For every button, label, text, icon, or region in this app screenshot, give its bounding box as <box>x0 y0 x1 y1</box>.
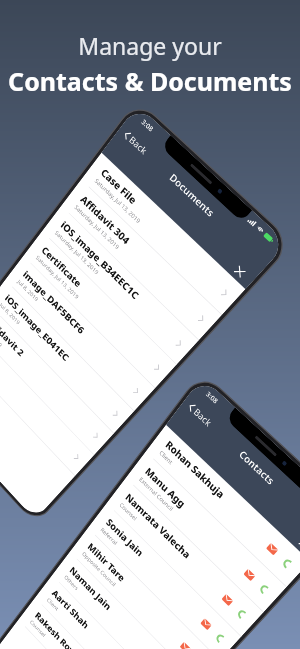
staticText: Referral <box>99 526 119 547</box>
button[interactable]: Rakesh Roy <box>18 598 159 649</box>
staticText: Rohan Sakhuja <box>163 438 227 501</box>
staticText: Back <box>127 133 150 157</box>
button[interactable]: Mihir Tare <box>70 528 220 649</box>
staticText: iOS_image_E041EC <box>3 292 71 364</box>
button[interactable]: Back <box>186 400 214 429</box>
staticText: Counsel <box>118 501 139 522</box>
staticText: Saturday, Jul 13, 2019 <box>54 229 101 276</box>
button[interactable]: Case File <box>81 152 245 315</box>
staticText: Back <box>192 405 214 429</box>
button[interactable]: image_DAF5BCF6 <box>5 256 155 411</box>
staticText: Contacts & Documents <box>8 64 292 98</box>
staticText: Affidavit 2 <box>0 315 26 359</box>
button[interactable]: iOS_image_B34EEC1C <box>42 206 199 365</box>
staticText: Opposite Council <box>81 550 118 588</box>
staticText: Client <box>158 449 174 466</box>
staticText: Saturday, Jul 13, 2019 <box>73 203 121 251</box>
button[interactable]: Call <box>214 631 226 645</box>
staticText: External Council <box>138 475 175 513</box>
button[interactable]: Namrata Valecha <box>106 478 263 637</box>
staticText: Saturday, Jul 13, 2019 <box>35 254 81 301</box>
staticText: Sonia Jain <box>104 516 146 559</box>
staticText: Affidavit 304 <box>78 192 132 247</box>
staticText: Manu Agg <box>143 464 188 510</box>
staticText: Others <box>63 573 80 592</box>
staticText: Case File <box>98 165 139 207</box>
button[interactable]: Email <box>200 617 212 631</box>
button[interactable]: Rohan Sakhuja <box>145 425 300 587</box>
staticText: Counsel <box>29 618 47 638</box>
staticText: Manage your <box>78 30 222 61</box>
staticText: Namrata Valecha <box>123 490 193 562</box>
staticText: Certificate <box>39 243 84 290</box>
staticText: Rakesh Roy <box>33 609 77 649</box>
staticText: Jul 8, 2019 <box>16 278 40 303</box>
button[interactable]: Call <box>235 607 248 621</box>
button[interactable]: Email <box>179 641 191 649</box>
staticText: Contacts <box>236 447 277 488</box>
staticText: 3:08 <box>204 389 220 406</box>
button[interactable]: Affidavit 304 <box>61 180 222 340</box>
button[interactable]: Close <box>299 538 300 549</box>
button[interactable]: Close <box>234 266 245 277</box>
button[interactable]: Call <box>257 582 271 596</box>
staticText: Saturday, Jul 13, 2019 <box>93 176 142 225</box>
staticText: Naman Jain <box>67 564 114 613</box>
button[interactable]: Sonia Jain <box>88 503 241 649</box>
staticText: Documents <box>167 170 217 220</box>
button[interactable]: iOS_image_E041EC <box>0 280 134 434</box>
button[interactable]: Email <box>265 542 279 556</box>
staticText: Jul 8, 2019 <box>0 324 3 348</box>
button[interactable]: Naman Jain <box>52 552 199 649</box>
button[interactable]: Back <box>122 128 150 157</box>
staticText: Client <box>46 596 60 612</box>
staticText: iOS_image_B34EEC1C <box>58 218 141 302</box>
button[interactable]: Call <box>280 556 294 570</box>
staticText: Aarti Shah <box>50 587 91 631</box>
button[interactable]: Notice <box>0 326 94 476</box>
staticText: Mihir Tare <box>85 540 127 584</box>
button[interactable]: Manu Agg <box>126 452 286 612</box>
button[interactable]: Affidavit 2 <box>0 303 114 455</box>
button[interactable]: Email <box>221 593 234 607</box>
staticText: image_DAF5BCF6 <box>21 268 87 336</box>
button[interactable]: Email <box>243 568 256 582</box>
staticText: 3:08 <box>140 117 155 133</box>
button[interactable]: Certificate <box>23 231 177 388</box>
staticText: Jul 8, 2019 <box>0 301 21 326</box>
button[interactable]: Aarti Shah <box>35 575 178 649</box>
